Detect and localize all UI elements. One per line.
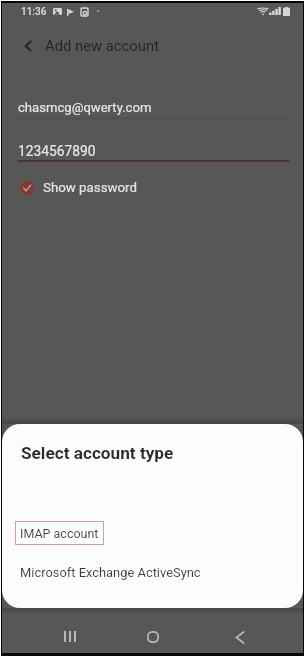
staticText: 11:36 <box>21 6 47 18</box>
button[interactable]: Recent apps <box>48 614 92 657</box>
button[interactable]: Back <box>218 615 262 657</box>
button[interactable]: Home <box>131 615 175 657</box>
staticText: IMAP account <box>20 526 99 541</box>
staticText: Microsoft Exchange ActiveSync <box>20 565 201 580</box>
button[interactable]: Show password <box>20 180 137 196</box>
staticText: 1234567890 <box>18 143 96 159</box>
staticText: Show password <box>43 180 137 196</box>
staticText: chasmcg@qwerty.com <box>18 100 152 115</box>
button[interactable]: Microsoft Exchange ActiveSync <box>2 560 303 584</box>
button[interactable]: Navigate up <box>12 30 44 62</box>
button[interactable]: IMAP account <box>15 521 104 545</box>
staticText: Select account type <box>21 443 174 463</box>
staticText: Add new account <box>45 37 159 54</box>
